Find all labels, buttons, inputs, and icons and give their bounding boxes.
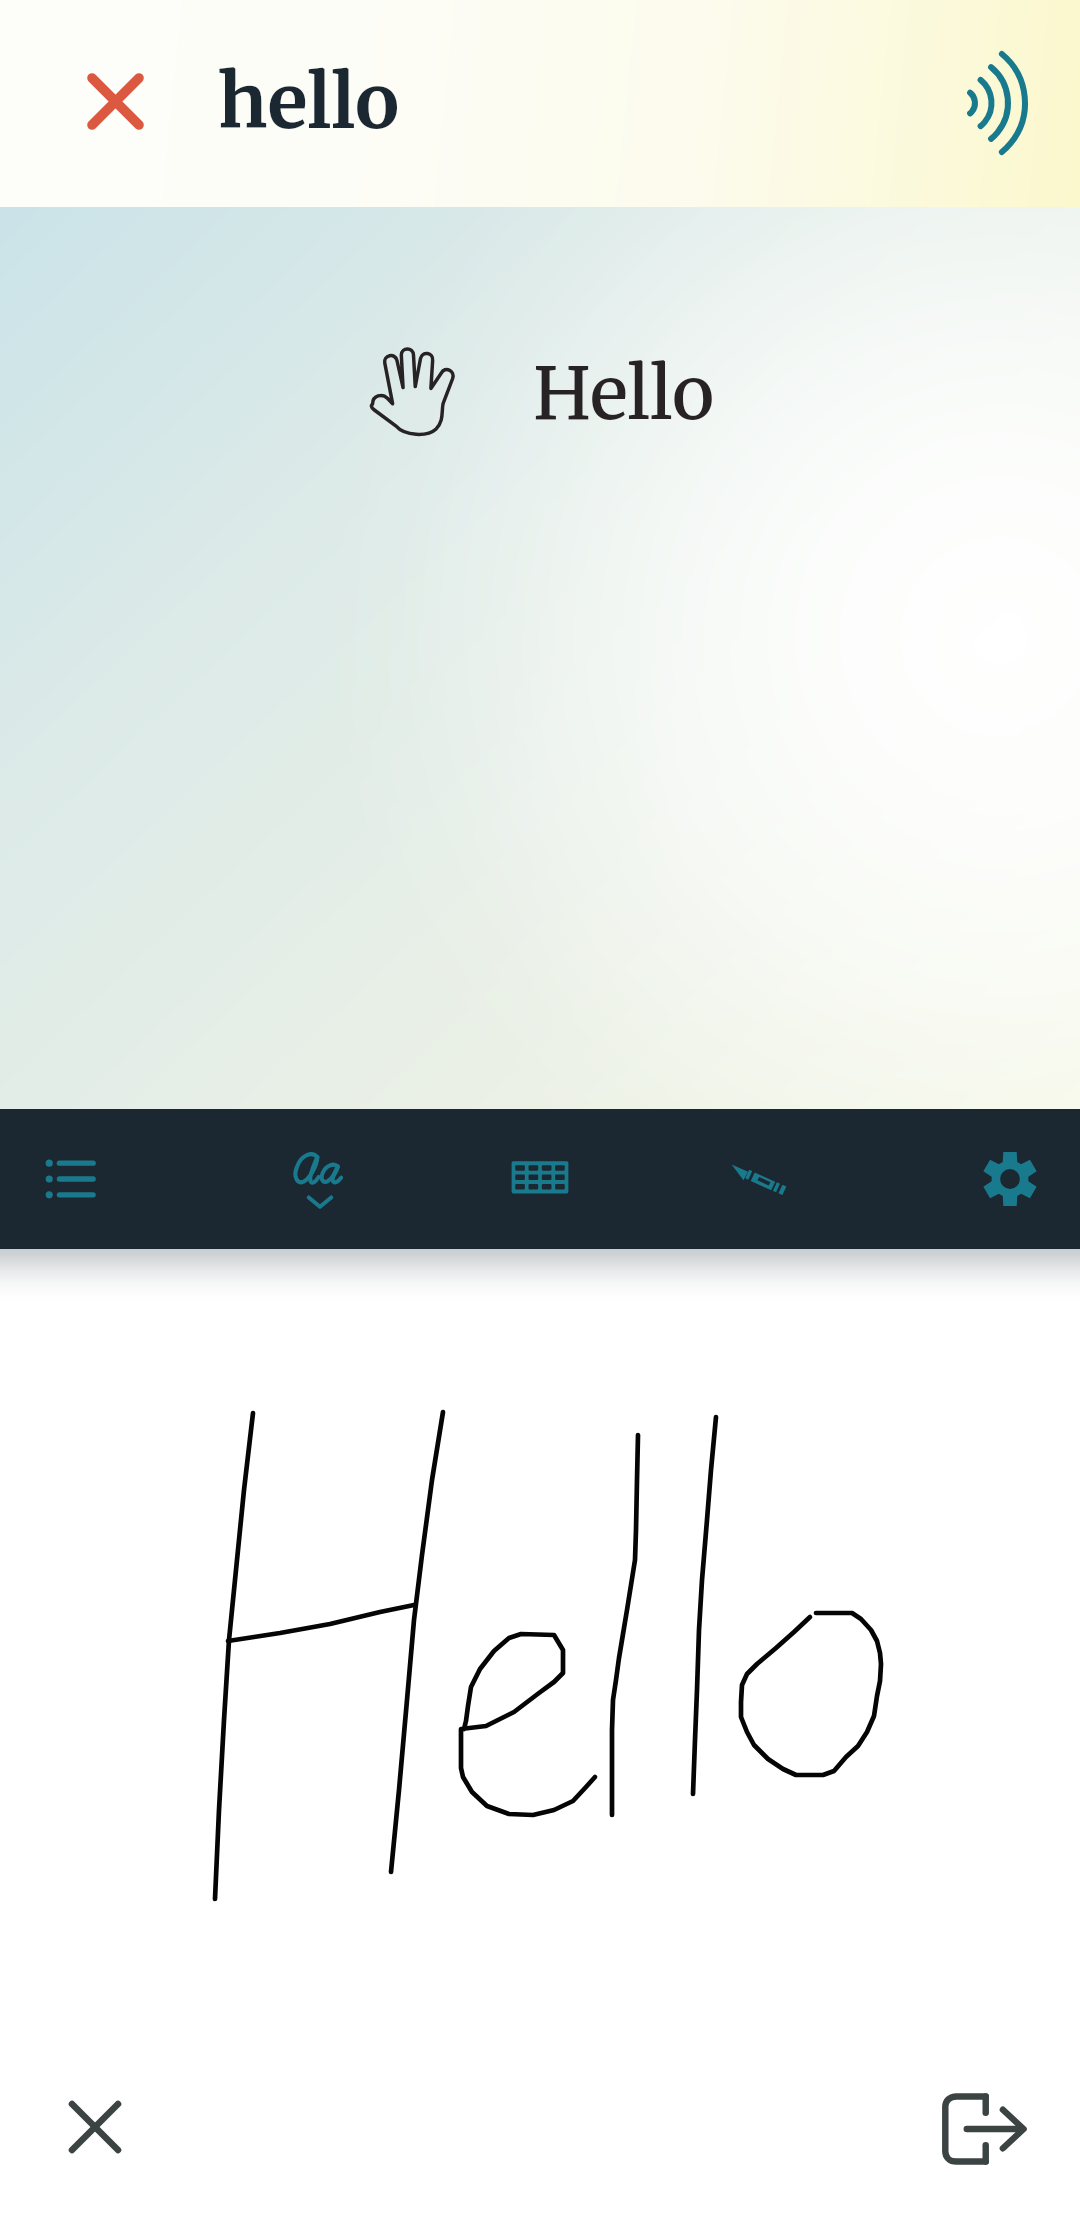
button[interactable]: Speak (936, 39, 1064, 167)
staticText: Hello (533, 348, 715, 439)
button[interactable]: Draw (688, 1109, 828, 1249)
button[interactable]: Clear (37, 2069, 153, 2185)
button[interactable]: Settings (940, 1109, 1080, 1249)
staticText: hello (218, 55, 400, 148)
button[interactable]: Send (926, 2071, 1042, 2187)
button[interactable]: Keyboard (470, 1109, 610, 1249)
button[interactable]: Close (51, 37, 179, 165)
button[interactable]: Phrases (0, 1109, 140, 1249)
button[interactable]: Text style (250, 1109, 390, 1249)
